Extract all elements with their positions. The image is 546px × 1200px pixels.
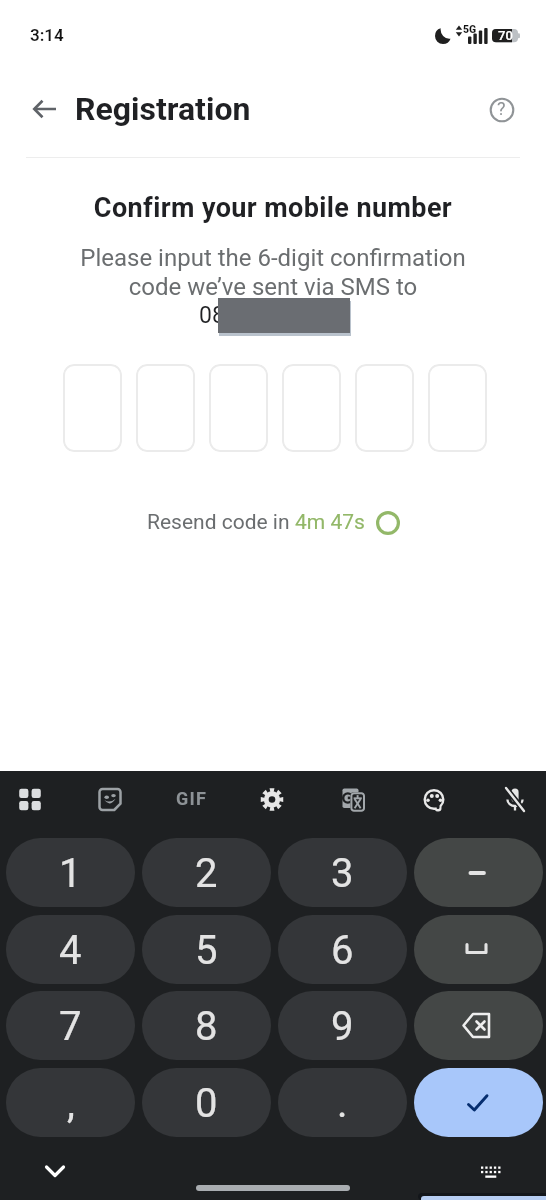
button[interactable]: Dash [414, 838, 543, 907]
staticText: 08 [199, 302, 225, 329]
staticText: 6 [331, 927, 354, 974]
button[interactable]: 3 [278, 838, 407, 907]
staticText: 4m 47s [295, 510, 365, 535]
staticText: GIF [176, 788, 208, 809]
staticText: ? [497, 98, 506, 119]
staticText: 4 [59, 927, 82, 974]
button[interactable]: Back [24, 88, 66, 130]
button[interactable]: 5 [142, 915, 271, 984]
staticText: 3 [331, 850, 354, 897]
button[interactable]: Digit 5 [355, 364, 414, 452]
button[interactable]: . [278, 1068, 407, 1137]
button[interactable]: Themes [412, 777, 456, 821]
button[interactable]: Backspace [414, 991, 543, 1060]
staticText: Registration [75, 90, 251, 128]
button[interactable]: Digit 1 [63, 364, 122, 452]
button[interactable]: 0 [142, 1068, 271, 1137]
staticText: . [337, 1080, 348, 1127]
button[interactable]: 9 [278, 991, 407, 1060]
staticText: 0 [195, 1080, 218, 1127]
button[interactable]: Digit 3 [209, 364, 268, 452]
button[interactable]: Apps [8, 777, 52, 821]
button[interactable]: Enter [414, 1068, 543, 1137]
staticText: 2 [195, 850, 218, 897]
button[interactable]: Digit 4 [282, 364, 341, 452]
button[interactable]: 1 [6, 838, 135, 907]
staticText: 3:14 [30, 25, 64, 45]
staticText: 7 [59, 1003, 82, 1050]
button[interactable]: Translate [331, 777, 375, 821]
staticText: 5G [463, 23, 477, 35]
staticText: 9 [331, 1003, 354, 1050]
staticText: 5 [195, 927, 218, 974]
staticText: 70 [498, 28, 513, 43]
staticText: Please input the 6-digit confirmation co… [0, 244, 546, 301]
button[interactable]: 2 [142, 838, 271, 907]
button[interactable]: Digit 6 [428, 364, 487, 452]
button[interactable]: Voice input [493, 777, 537, 821]
button[interactable]: 7 [6, 991, 135, 1060]
button[interactable]: Digit 2 [136, 364, 195, 452]
staticText: , [67, 1080, 75, 1127]
button[interactable]: Settings [250, 777, 294, 821]
button[interactable]: , [6, 1068, 135, 1137]
staticText: Confirm your mobile number [0, 192, 546, 224]
button[interactable]: Switch keyboard [469, 1151, 512, 1194]
button[interactable]: GIF [169, 777, 213, 821]
staticText: 1 [59, 850, 82, 897]
button[interactable]: 6 [278, 915, 407, 984]
staticText: 8 [195, 1003, 218, 1050]
button[interactable]: 8 [142, 991, 271, 1060]
button[interactable]: Hide keyboard [35, 1151, 75, 1191]
button[interactable]: Stickers [88, 777, 132, 821]
staticText: Resend code in [147, 510, 295, 535]
button[interactable]: Space [414, 915, 543, 984]
button[interactable]: Help [479, 87, 524, 132]
button[interactable]: 4 [6, 915, 135, 984]
